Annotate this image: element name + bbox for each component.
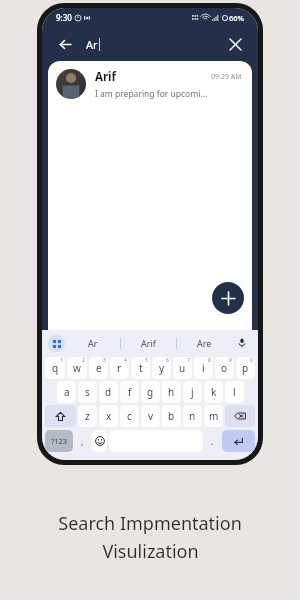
button[interactable]: Clear bbox=[224, 33, 246, 55]
staticText: h bbox=[168, 385, 175, 399]
button[interactable]: s bbox=[78, 381, 97, 403]
staticText: Search Impmentation bbox=[58, 511, 242, 536]
button[interactable]: Ar bbox=[65, 330, 120, 356]
staticText: 0 bbox=[250, 357, 253, 364]
button[interactable]: g bbox=[141, 381, 160, 403]
staticText: 1 bbox=[60, 357, 63, 364]
staticText: b bbox=[168, 409, 175, 423]
button[interactable]: Arif bbox=[121, 330, 176, 356]
staticText: 8 bbox=[208, 357, 211, 364]
staticText: l bbox=[233, 385, 236, 399]
button[interactable]: n bbox=[183, 405, 202, 427]
staticText: w bbox=[73, 361, 81, 375]
button[interactable]: o bbox=[215, 357, 234, 379]
staticText: i bbox=[202, 361, 205, 375]
staticText: 4 bbox=[124, 357, 127, 364]
staticText: e bbox=[96, 361, 102, 375]
staticText: q bbox=[52, 361, 59, 375]
staticText: 5 bbox=[145, 357, 148, 364]
staticText: Ar bbox=[88, 337, 98, 349]
button[interactable]: c bbox=[120, 405, 139, 427]
staticText: Arif bbox=[141, 337, 156, 349]
staticText: m bbox=[209, 409, 219, 423]
staticText: c bbox=[127, 409, 132, 423]
staticText: u bbox=[179, 361, 186, 375]
staticText: s bbox=[85, 385, 90, 399]
staticText: 9:30 bbox=[56, 12, 72, 23]
button[interactable]: f bbox=[120, 381, 139, 403]
button[interactable]: w bbox=[67, 357, 87, 379]
staticText: 2 bbox=[82, 357, 85, 364]
staticText: d bbox=[105, 385, 112, 399]
staticText: 7 bbox=[187, 357, 190, 364]
staticText: , bbox=[81, 435, 84, 447]
button[interactable]: , bbox=[74, 429, 91, 453]
staticText: p bbox=[242, 361, 249, 375]
button[interactable]: Enter bbox=[222, 430, 255, 452]
button[interactable]: Are bbox=[177, 330, 232, 356]
staticText: 9 bbox=[229, 357, 232, 364]
button[interactable]: Toolbar bbox=[48, 335, 65, 352]
staticText: r bbox=[117, 361, 122, 375]
button[interactable]: h bbox=[162, 381, 181, 403]
button[interactable]: l bbox=[225, 381, 244, 403]
button[interactable]: p bbox=[236, 357, 255, 379]
staticText: g bbox=[147, 385, 154, 399]
button[interactable]: r bbox=[110, 357, 129, 379]
staticText: k bbox=[211, 385, 217, 399]
button[interactable]: y bbox=[152, 357, 171, 379]
staticText: Ar bbox=[86, 37, 98, 52]
button[interactable]: Back bbox=[54, 33, 76, 55]
button[interactable]: Backspace bbox=[225, 405, 255, 427]
staticText: j bbox=[191, 385, 194, 399]
button[interactable]: q bbox=[45, 357, 65, 379]
button[interactable]: i bbox=[194, 357, 213, 379]
staticText: v bbox=[148, 409, 154, 423]
staticText: 66% bbox=[229, 13, 244, 23]
staticText: 3 bbox=[103, 357, 106, 364]
staticText: x bbox=[106, 409, 112, 423]
button[interactable]: New message bbox=[212, 282, 244, 314]
button[interactable]: a bbox=[57, 381, 76, 403]
button[interactable]: t bbox=[131, 357, 150, 379]
staticText: t bbox=[139, 361, 143, 375]
button[interactable]: m bbox=[204, 405, 223, 427]
button[interactable]: e bbox=[89, 357, 108, 379]
button[interactable]: v bbox=[141, 405, 160, 427]
button[interactable]: u bbox=[173, 357, 192, 379]
staticText: 09:29 AM bbox=[211, 72, 242, 82]
staticText: Are bbox=[197, 337, 212, 349]
staticText: y bbox=[159, 361, 165, 375]
button[interactable]: d bbox=[99, 381, 118, 403]
staticText: z bbox=[85, 409, 90, 423]
button[interactable]: x bbox=[99, 405, 118, 427]
button[interactable]: z bbox=[78, 405, 97, 427]
button[interactable]: . bbox=[204, 429, 221, 453]
staticText: I am preparing for upcomi... bbox=[95, 88, 208, 100]
button[interactable]: b bbox=[162, 405, 181, 427]
staticText: Arif bbox=[95, 69, 116, 85]
staticText: ?123 bbox=[51, 436, 68, 446]
button[interactable]: Shift bbox=[45, 405, 76, 427]
button[interactable]: ?123 bbox=[45, 430, 73, 452]
button[interactable]: Emoji bbox=[92, 430, 107, 452]
staticText: a bbox=[64, 385, 70, 399]
button[interactable]: Voice input bbox=[232, 330, 252, 356]
staticText: 6 bbox=[166, 357, 169, 364]
button[interactable]: j bbox=[183, 381, 202, 403]
staticText: f bbox=[128, 385, 132, 399]
staticText: . bbox=[211, 435, 214, 447]
staticText: o bbox=[221, 361, 228, 375]
staticText: n bbox=[189, 409, 196, 423]
button[interactable]: Arif bbox=[48, 61, 252, 107]
staticText: Visulization bbox=[102, 539, 199, 564]
button[interactable]: k bbox=[204, 381, 223, 403]
